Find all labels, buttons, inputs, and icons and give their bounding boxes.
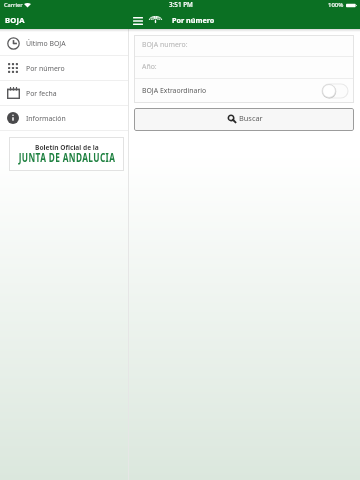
staticText: Por número xyxy=(26,64,65,73)
button[interactable]: BOJA Extraordinario xyxy=(322,84,348,98)
staticText: Información xyxy=(26,114,66,123)
staticText: Por número xyxy=(172,15,215,25)
button[interactable]: BOJA numero: xyxy=(134,35,354,56)
staticText: Último BOJA xyxy=(26,39,66,48)
button[interactable]: Junta de Andalucía xyxy=(148,13,163,28)
staticText: JUNTA DE ANDALUCIA xyxy=(11,149,123,165)
staticText: BOJA Extraordinario xyxy=(142,86,207,95)
staticText: 100% xyxy=(328,1,344,9)
staticText: Año: xyxy=(142,62,157,71)
staticText: Carrier xyxy=(4,1,23,9)
staticText: Buscar xyxy=(239,113,263,123)
staticText: BOJA numero: xyxy=(142,40,188,49)
staticText: Por fecha xyxy=(26,89,57,98)
button[interactable]: Último BOJA xyxy=(0,31,128,55)
button[interactable]: Menu xyxy=(131,13,145,28)
button[interactable]: Información xyxy=(0,106,128,130)
button[interactable]: Buscar xyxy=(134,108,354,131)
button[interactable]: Año: xyxy=(134,57,354,78)
button[interactable]: Por fecha xyxy=(0,81,128,105)
staticText: 3:51 PM xyxy=(169,0,193,9)
staticText: BOJA xyxy=(5,15,25,25)
staticText: Boletín Oficial de la xyxy=(35,143,99,152)
button[interactable]: Por número xyxy=(0,56,128,80)
